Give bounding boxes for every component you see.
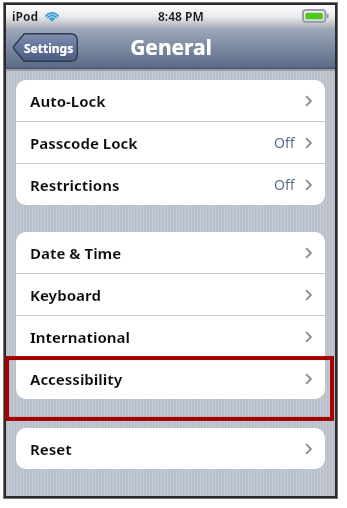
- staticText: General: [130, 33, 212, 62]
- staticText: Auto-Lock: [30, 91, 106, 111]
- button[interactable]: Reset: [16, 428, 325, 469]
- staticText: Off: [274, 133, 295, 152]
- button[interactable]: Auto-Lock: [16, 80, 325, 121]
- staticText: Reset: [30, 439, 72, 459]
- button[interactable]: Settings: [12, 33, 78, 62]
- staticText: International: [30, 327, 131, 347]
- button[interactable]: Restrictions: [16, 164, 325, 205]
- button[interactable]: Accessibility: [16, 358, 325, 399]
- staticText: iPod: [12, 8, 39, 24]
- button[interactable]: International: [16, 316, 325, 357]
- staticText: Settings: [24, 40, 74, 56]
- staticText: Accessibility: [30, 369, 123, 389]
- staticText: Date & Time: [30, 243, 122, 263]
- staticText: 8:48 PM: [158, 8, 204, 24]
- staticText: Restrictions: [30, 175, 120, 195]
- staticText: Passcode Lock: [30, 133, 138, 153]
- button[interactable]: Keyboard: [16, 274, 325, 315]
- button[interactable]: Passcode Lock: [16, 122, 325, 163]
- staticText: Off: [274, 175, 295, 194]
- staticText: Keyboard: [30, 285, 101, 305]
- button[interactable]: Date & Time: [16, 232, 325, 273]
